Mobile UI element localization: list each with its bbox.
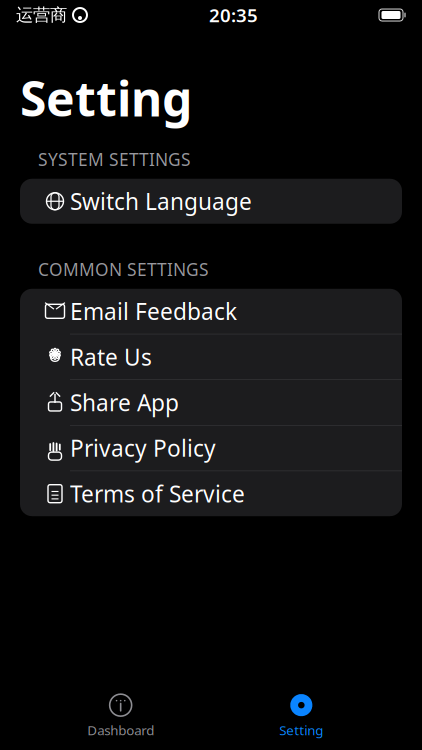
staticText: Privacy Policy (70, 433, 216, 463)
button[interactable]: Dashboard (61, 692, 181, 740)
staticText: Setting (279, 721, 323, 739)
staticText: Share App (70, 387, 179, 417)
staticText: Terms of Service (70, 479, 245, 509)
button[interactable]: Share App (20, 380, 402, 425)
button[interactable]: Privacy Policy (20, 426, 402, 471)
button[interactable]: Rate Us (20, 334, 402, 379)
button[interactable]: Email Feedback (20, 289, 402, 334)
staticText: Setting (20, 66, 192, 130)
staticText: Rate Us (70, 342, 152, 372)
button[interactable]: Setting (241, 692, 361, 740)
button[interactable]: Switch Language (20, 179, 402, 224)
staticText: 运营商 (16, 4, 67, 26)
staticText: Switch Language (70, 186, 252, 216)
staticText: SYSTEM SETTINGS (38, 148, 191, 171)
staticText: 20:35 (209, 3, 258, 27)
button[interactable]: Terms of Service (20, 471, 402, 516)
staticText: Dashboard (87, 721, 154, 739)
staticText: COMMON SETTINGS (38, 258, 209, 281)
staticText: Email Feedback (70, 296, 237, 326)
